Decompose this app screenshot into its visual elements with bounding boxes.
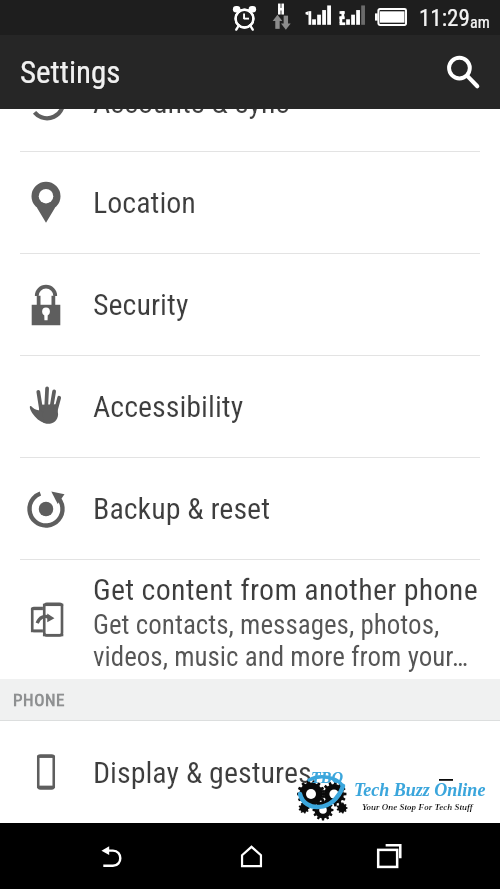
button[interactable]: Get content from another phone bbox=[0, 560, 500, 679]
staticText: Settings bbox=[20, 54, 121, 90]
staticText: videos, music and more from your… bbox=[93, 641, 468, 673]
staticText: Backup & reset bbox=[93, 491, 271, 526]
button[interactable]: Search bbox=[426, 35, 500, 109]
button[interactable]: Display & gestures bbox=[0, 721, 500, 823]
staticText: Get content from another phone bbox=[93, 572, 478, 607]
staticText: PHONE bbox=[13, 690, 66, 710]
staticText: TBO bbox=[311, 769, 343, 787]
button[interactable]: Accessibility bbox=[0, 356, 500, 457]
staticText: am bbox=[470, 13, 490, 32]
button[interactable]: Backup & reset bbox=[0, 458, 500, 559]
button[interactable]: Location bbox=[0, 152, 500, 253]
staticText: Display & gestures bbox=[93, 755, 312, 790]
button[interactable]: Home bbox=[212, 823, 290, 889]
button[interactable]: Recents bbox=[350, 823, 428, 889]
button[interactable]: Back bbox=[73, 823, 151, 889]
staticText: Accounts & sync bbox=[93, 109, 290, 120]
staticText: Tech Buzz Online bbox=[354, 780, 486, 800]
button[interactable]: Security bbox=[0, 254, 500, 355]
staticText: Get contacts, messages, photos, bbox=[93, 609, 440, 641]
staticText: Location bbox=[93, 185, 196, 220]
staticText: 11:29 bbox=[419, 5, 470, 32]
staticText: Security bbox=[93, 287, 189, 322]
staticText: Your One Stop For Tech Stuff bbox=[362, 802, 473, 812]
button[interactable]: Accounts & sync bbox=[0, 109, 500, 151]
staticText: Accessibility bbox=[93, 389, 244, 424]
